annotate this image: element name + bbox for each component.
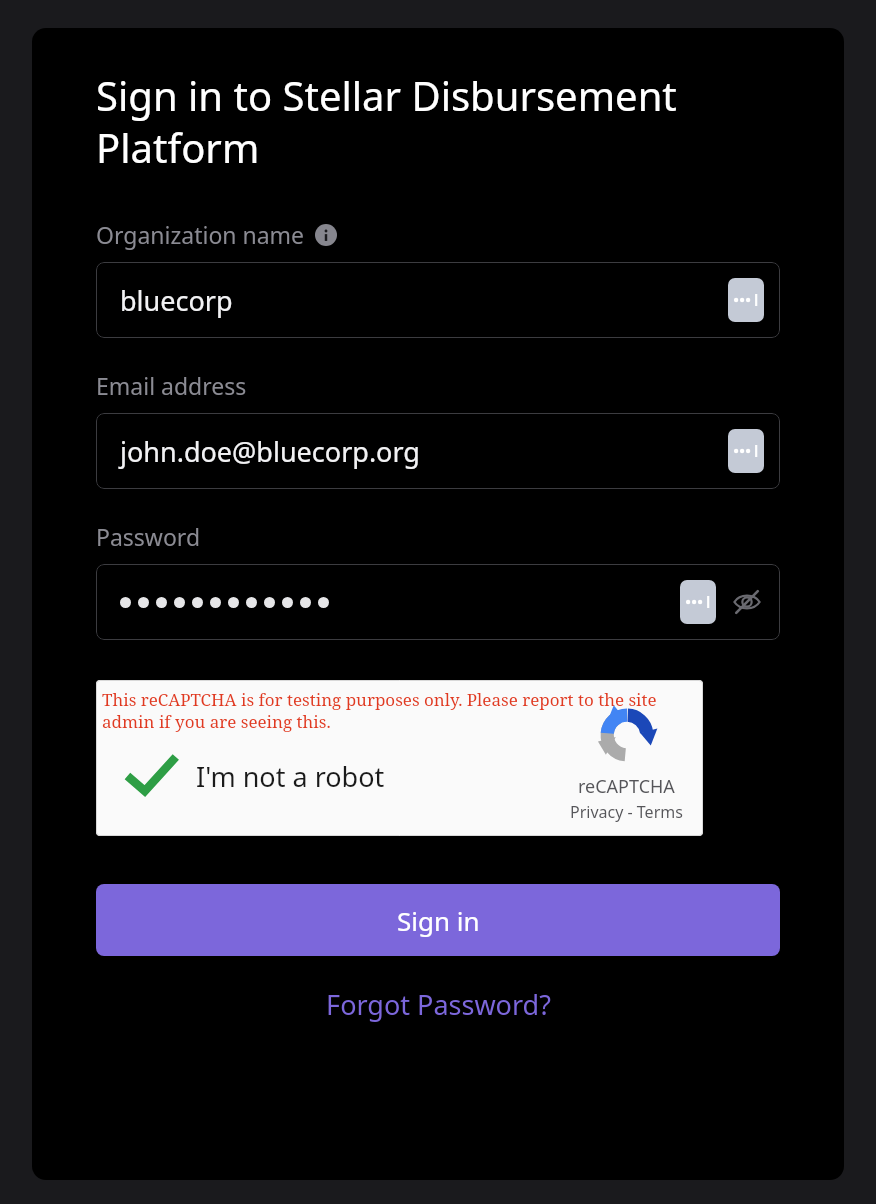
staticText: Forgot Password? xyxy=(326,986,551,1023)
staticText: I'm not a robot xyxy=(196,758,385,795)
button[interactable]: bluecorp xyxy=(96,262,780,338)
button[interactable]: john.doe@bluecorp.org xyxy=(96,413,780,489)
staticText: Password xyxy=(96,521,201,552)
button[interactable]: This reCAPTCHA is for testing purposes o… xyxy=(96,680,703,836)
staticText: Sign in to Stellar Disbursement Platform xyxy=(96,68,780,175)
staticText: bluecorp xyxy=(120,282,233,319)
button[interactable]: Autofill from password manager xyxy=(96,564,780,640)
button[interactable]: Information about organization name xyxy=(315,224,337,246)
staticText: Email address xyxy=(96,370,247,401)
button[interactable]: Sign in xyxy=(96,884,780,956)
staticText: Privacy - Terms xyxy=(570,801,683,823)
staticText: This reCAPTCHA is for testing purposes o… xyxy=(102,688,677,733)
button[interactable]: Autofill from password manager xyxy=(728,429,764,473)
button[interactable]: Autofill from password manager xyxy=(680,580,716,624)
staticText: Organization name xyxy=(96,219,305,250)
button[interactable]: Autofill from password manager xyxy=(728,278,764,322)
staticText: john.doe@bluecorp.org xyxy=(120,433,420,470)
button[interactable]: Show password xyxy=(730,585,764,619)
staticText: Sign in xyxy=(397,903,480,938)
button[interactable]: Forgot Password? xyxy=(96,978,780,1031)
staticText: reCAPTCHA xyxy=(578,774,675,799)
